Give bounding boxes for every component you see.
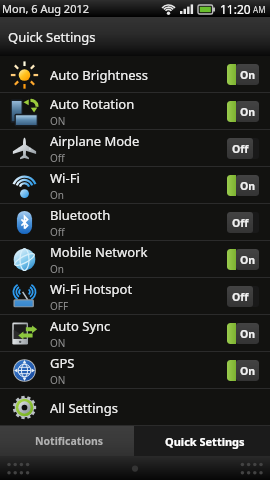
staticText: Airplane Mode <box>50 132 140 150</box>
staticText: Off <box>232 142 249 156</box>
staticText: Off <box>50 225 65 239</box>
staticText: On <box>50 188 64 202</box>
staticText: On <box>240 105 256 119</box>
staticText: ON <box>50 114 66 128</box>
staticText: Off <box>50 151 65 165</box>
button[interactable]: GPS <box>0 352 270 389</box>
button[interactable]: Bluetooth <box>0 204 270 241</box>
staticText: Wi-Fi Hotspot <box>50 280 133 298</box>
button[interactable]: Auto Brightness <box>0 56 270 93</box>
button[interactable]: Airplane Mode <box>0 130 270 167</box>
staticText: Auto Sync <box>50 317 111 335</box>
staticText: Off <box>232 216 249 230</box>
staticText: Bluetooth <box>50 206 111 224</box>
staticText: On <box>240 327 256 341</box>
staticText: On <box>240 364 256 378</box>
staticText: On <box>50 262 64 276</box>
staticText: AM <box>251 4 266 15</box>
button[interactable]: Auto Sync <box>0 315 270 352</box>
staticText: On <box>240 179 256 193</box>
button[interactable]: Off <box>227 212 259 233</box>
staticText: All Settings <box>50 399 118 417</box>
button[interactable]: On <box>227 64 259 85</box>
staticText: On <box>240 68 256 82</box>
staticText: On <box>240 253 256 267</box>
staticText: Quick Settings <box>8 28 96 46</box>
button[interactable]: On <box>227 360 259 381</box>
staticText: Quick Settings <box>165 434 245 449</box>
button[interactable]: On <box>227 249 259 270</box>
staticText: 11:20 <box>220 1 251 17</box>
button[interactable]: On <box>227 323 259 344</box>
staticText: Mon, 6 Aug 2012 <box>2 1 90 16</box>
staticText: Notifications <box>35 434 104 448</box>
staticText: GPS <box>50 354 75 372</box>
staticText: ON <box>50 336 66 350</box>
staticText: OFF <box>50 299 69 313</box>
button[interactable]: Notifications <box>0 426 134 456</box>
button[interactable]: Off <box>227 138 259 159</box>
button[interactable]: On <box>227 101 259 122</box>
button[interactable]: Wi-Fi <box>0 167 270 204</box>
staticText: Auto Brightness <box>50 66 148 84</box>
button[interactable]: On <box>227 175 259 196</box>
button[interactable]: Mobile Network <box>0 241 270 278</box>
button[interactable]: All Settings <box>0 389 270 426</box>
staticText: Auto Rotation <box>50 95 135 113</box>
button[interactable]: Wi-Fi Hotspot <box>0 278 270 315</box>
staticText: Off <box>232 290 249 304</box>
staticText: ON <box>50 373 66 387</box>
button[interactable]: Quick Settings <box>134 426 270 456</box>
button[interactable]: Off <box>227 286 259 307</box>
staticText: Wi-Fi <box>50 169 80 187</box>
staticText: Mobile Network <box>50 243 148 261</box>
button[interactable]: Auto Rotation <box>0 93 270 130</box>
